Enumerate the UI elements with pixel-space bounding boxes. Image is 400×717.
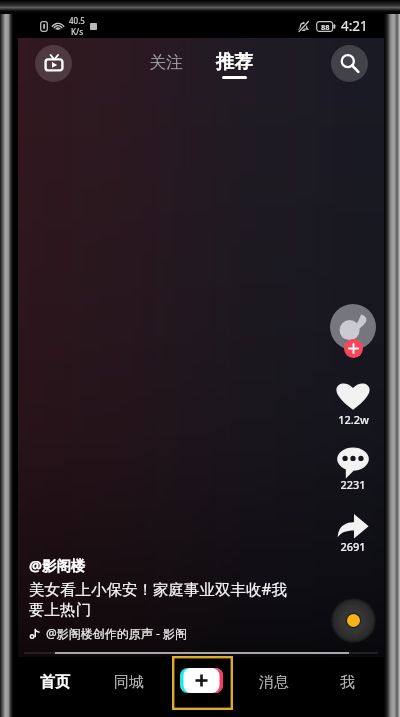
staticText: 2691 [340,539,366,554]
button[interactable]: Music [331,598,376,643]
staticText: 12.2w [338,412,369,427]
staticText: 消息 [259,673,289,692]
button[interactable]: Like [318,378,388,426]
staticText: 首页 [40,673,70,692]
button[interactable]: Live [35,45,72,82]
button[interactable]: Comment [318,444,388,491]
button[interactable]: Create [172,656,233,710]
staticText: 2231 [340,477,366,492]
staticText: K/s [71,26,84,37]
button[interactable]: @影阁楼创作的原声 - 影阁 [29,625,187,641]
button[interactable]: 推荐 [210,46,259,83]
button[interactable]: Author avatar, follow [330,304,376,358]
button[interactable]: @影阁楼 [29,555,86,575]
staticText: 88 [321,22,330,32]
staticText: 美女看上小保安！家庭事业双丰收#我要上热门 [29,578,289,620]
staticText: 推荐 [216,50,253,73]
staticText: @影阁楼创作的原声 - 影阁 [46,625,187,641]
button[interactable]: 我 [313,665,381,699]
staticText: 关注 [149,52,183,73]
staticText: 我 [340,673,355,692]
staticText: 40.5 [69,15,85,26]
button[interactable]: 首页 [21,665,89,699]
button[interactable]: Search [331,45,368,82]
staticText: 同城 [114,673,144,692]
button[interactable]: 关注 [143,47,189,78]
button[interactable]: 同城 [95,665,163,699]
button[interactable]: Share [318,510,388,553]
staticText: 4:21 [341,17,368,35]
button[interactable]: 消息 [240,665,308,699]
